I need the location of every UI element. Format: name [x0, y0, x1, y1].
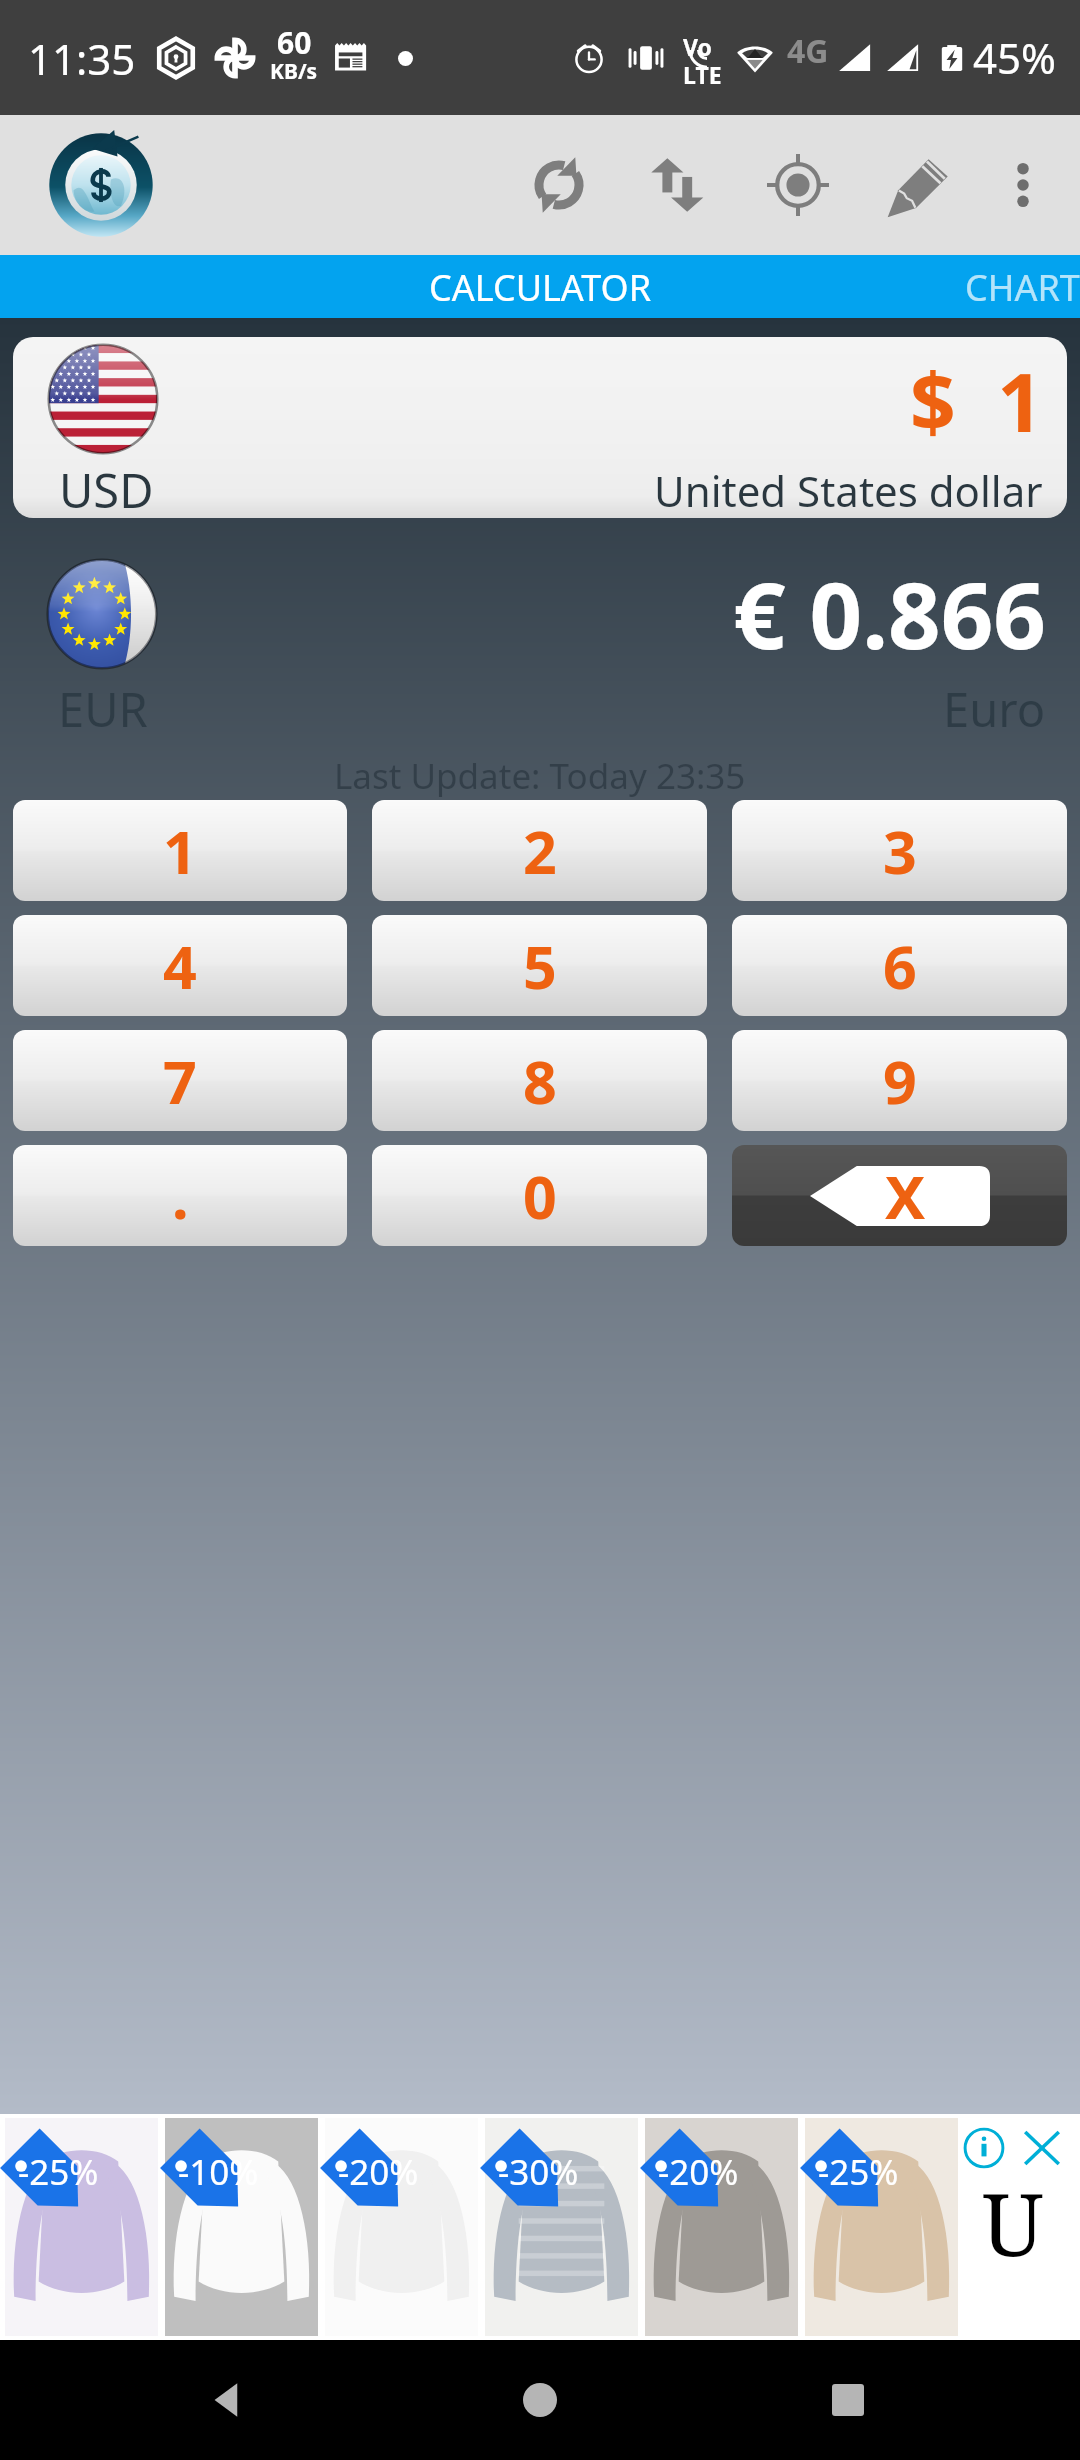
staticText: USD: [59, 458, 154, 518]
button[interactable]: Refresh rates: [509, 135, 609, 235]
staticText: 11:35: [28, 30, 136, 87]
staticText: U: [982, 2164, 1044, 2281]
button[interactable]: -25%: [805, 2118, 958, 2336]
button[interactable]: 4: [13, 915, 347, 1016]
staticText: 6: [883, 926, 917, 1006]
button[interactable]: -20%: [645, 2118, 798, 2336]
button[interactable]: 2: [372, 800, 707, 901]
button[interactable]: 5: [372, 915, 707, 1016]
button[interactable]: Home: [492, 2352, 588, 2448]
button[interactable]: Back: [180, 2352, 276, 2448]
staticText: 5: [523, 926, 557, 1006]
button[interactable]: Close ad: [1020, 2126, 1064, 2170]
staticText: LTE: [683, 59, 722, 90]
button[interactable]: Ad info: [962, 2126, 1006, 2170]
button[interactable]: CHART: [925, 255, 1080, 318]
button[interactable]: Locate: [748, 135, 848, 235]
staticText: 45%: [973, 29, 1056, 86]
button[interactable]: 9: [732, 1030, 1067, 1131]
button[interactable]: Swap currencies: [631, 135, 731, 235]
button[interactable]: Recent apps: [800, 2352, 896, 2448]
button[interactable]: Backspace: [732, 1145, 1067, 1246]
button[interactable]: EUR: [0, 540, 1080, 725]
staticText: € 0.866: [733, 551, 1046, 676]
staticText: 8: [523, 1041, 557, 1121]
staticText: -20%: [658, 2148, 739, 2196]
button[interactable]: 6: [732, 915, 1067, 1016]
button[interactable]: -20%: [325, 2118, 478, 2336]
staticText: EUR: [58, 677, 148, 741]
button[interactable]: 3: [732, 800, 1067, 901]
staticText: KB/s: [270, 57, 318, 86]
staticText: -25%: [18, 2148, 99, 2196]
button[interactable]: 1: [13, 800, 347, 901]
staticText: United States dollar: [654, 462, 1043, 518]
button[interactable]: More options: [973, 135, 1073, 235]
staticText: X: [885, 1155, 926, 1237]
staticText: 4: [163, 926, 197, 1006]
staticText: 2: [523, 811, 557, 891]
staticText: 9: [883, 1041, 917, 1121]
staticText: 0: [523, 1156, 557, 1236]
button[interactable]: 8: [372, 1030, 707, 1131]
staticText: $ 1: [910, 346, 1044, 455]
staticText: -30%: [498, 2148, 579, 2196]
staticText: Last Update: Today 23:35: [334, 752, 746, 800]
button[interactable]: CALCULATOR: [389, 255, 692, 318]
button[interactable]: -25%: [5, 2118, 158, 2336]
staticText: 4G: [787, 29, 829, 73]
staticText: CALCULATOR: [429, 263, 652, 310]
button[interactable]: .: [13, 1145, 347, 1246]
staticText: Vo: [683, 31, 712, 62]
staticText: Euro: [943, 677, 1046, 741]
staticText: -20%: [338, 2148, 419, 2196]
staticText: 3: [883, 811, 917, 891]
staticText: 1: [163, 811, 197, 891]
staticText: CHART: [965, 263, 1080, 310]
button[interactable]: 0: [372, 1145, 707, 1246]
button[interactable]: -10%: [165, 2118, 318, 2336]
button[interactable]: App logo: [46, 130, 156, 240]
staticText: 7: [163, 1041, 197, 1121]
button[interactable]: -30%: [485, 2118, 638, 2336]
staticText: -10%: [178, 2148, 259, 2196]
button[interactable]: USD: [13, 337, 1067, 518]
staticText: .: [172, 1156, 189, 1236]
staticText: -25%: [818, 2148, 899, 2196]
staticText: 60: [277, 22, 312, 63]
button[interactable]: Edit: [870, 135, 970, 235]
button[interactable]: 7: [13, 1030, 347, 1131]
